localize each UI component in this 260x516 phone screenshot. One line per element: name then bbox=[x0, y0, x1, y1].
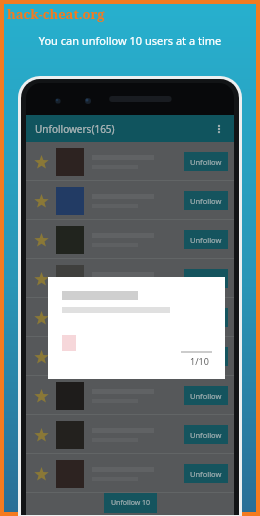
button[interactable]: Favorite bbox=[30, 424, 52, 446]
staticText: Unfollowers(165) bbox=[35, 122, 115, 136]
button[interactable]: Unfollow bbox=[184, 308, 228, 327]
button[interactable]: Favorite bbox=[26, 454, 234, 493]
staticText: Unfollow bbox=[190, 391, 222, 401]
staticText: Unfollow bbox=[190, 352, 222, 362]
staticText: 1/10 bbox=[190, 355, 209, 367]
button[interactable]: Favorite bbox=[30, 268, 52, 290]
button[interactable]: Favorite bbox=[26, 142, 234, 181]
button[interactable]: Unfollow bbox=[184, 230, 228, 249]
button[interactable]: Unfollow bbox=[184, 464, 228, 483]
button[interactable]: Favorite bbox=[30, 463, 52, 485]
button[interactable]: Favorite bbox=[30, 229, 52, 251]
button[interactable]: Favorite bbox=[26, 376, 234, 415]
button[interactable]: Unfollow bbox=[184, 347, 228, 366]
staticText: Unfollow bbox=[190, 235, 222, 245]
button[interactable]: 1/10 bbox=[48, 277, 225, 379]
button[interactable]: Favorite bbox=[30, 346, 52, 368]
button[interactable]: Favorite bbox=[30, 385, 52, 407]
button[interactable]: Unfollow bbox=[184, 386, 228, 405]
button[interactable]: Favorite bbox=[30, 151, 52, 173]
button[interactable]: Unfollow bbox=[184, 425, 228, 444]
button[interactable]: Favorite bbox=[26, 259, 234, 298]
button[interactable]: More options bbox=[209, 119, 229, 139]
staticText: Unfollow bbox=[190, 430, 222, 440]
staticText: You can unfollow 10 users at a time bbox=[0, 33, 260, 48]
button[interactable]: Unfollow 10 bbox=[104, 493, 157, 513]
staticText: hack-cheat.org bbox=[7, 5, 105, 23]
button[interactable]: Favorite bbox=[26, 415, 234, 454]
button[interactable]: Unfollow bbox=[184, 191, 228, 210]
staticText: Unfollow 10 bbox=[111, 498, 151, 508]
button[interactable]: Unfollow bbox=[184, 269, 228, 288]
button[interactable]: Favorite bbox=[26, 337, 234, 376]
staticText: Unfollow bbox=[190, 274, 222, 284]
button[interactable]: Favorite bbox=[30, 307, 52, 329]
button[interactable]: Favorite bbox=[26, 220, 234, 259]
button[interactable]: Favorite bbox=[26, 181, 234, 220]
staticText: Unfollow bbox=[190, 469, 222, 479]
button[interactable]: Favorite bbox=[26, 298, 234, 337]
staticText: Unfollow bbox=[190, 157, 222, 167]
staticText: Unfollow bbox=[190, 196, 222, 206]
button[interactable]: Unfollow bbox=[184, 152, 228, 171]
button[interactable]: Favorite bbox=[30, 190, 52, 212]
